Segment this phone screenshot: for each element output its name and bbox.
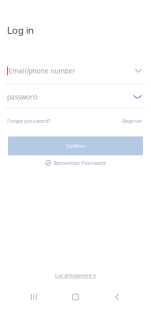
staticText: password bbox=[7, 92, 37, 101]
button[interactable]: Forget password? bbox=[7, 117, 50, 124]
button[interactable]: Choose account bbox=[133, 67, 144, 75]
staticText: Email/phone number bbox=[8, 66, 75, 75]
button[interactable]: Confirm bbox=[8, 136, 143, 155]
button[interactable]: Remember Password bbox=[0, 159, 151, 166]
button[interactable]: Home bbox=[55, 294, 96, 300]
button[interactable]: Back bbox=[96, 294, 138, 300]
button[interactable]: Register bbox=[122, 117, 142, 124]
button[interactable]: Recents bbox=[13, 294, 55, 300]
staticText: Local experience bbox=[55, 272, 96, 279]
button[interactable]: Show password bbox=[131, 93, 144, 101]
staticText: Confirm bbox=[66, 142, 85, 149]
staticText: Forget password? bbox=[7, 117, 50, 124]
staticText: Remember Password bbox=[53, 159, 105, 166]
staticText: Register bbox=[122, 117, 142, 124]
button[interactable]: Local experience bbox=[0, 272, 151, 279]
staticText: Log in bbox=[7, 24, 34, 36]
